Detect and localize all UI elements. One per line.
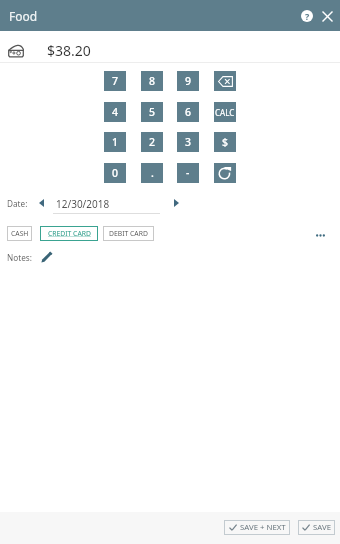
button[interactable]: CASH [7, 226, 32, 241]
button[interactable]: 1 [104, 132, 126, 152]
staticText: 0 [112, 166, 119, 180]
button[interactable] [214, 163, 236, 183]
staticText: 4 [112, 105, 119, 119]
staticText: 9 [185, 74, 192, 88]
staticText: CALC [215, 107, 235, 118]
button[interactable]: SAVE + NEXT [224, 520, 290, 535]
staticText: 1 [112, 135, 119, 149]
button[interactable]: Previous day [33, 195, 49, 211]
staticText: - [186, 166, 190, 180]
button[interactable]: 6 [177, 102, 199, 122]
staticText: DEBIT CARD [109, 229, 148, 238]
staticText: 8 [149, 74, 156, 88]
staticText: 2 [149, 135, 156, 149]
button[interactable]: 0 [104, 163, 126, 183]
staticText: Date: [7, 198, 28, 209]
button[interactable]: 4 [104, 102, 126, 122]
button[interactable]: Close [317, 6, 338, 27]
staticText: CASH [11, 229, 29, 238]
button[interactable]: . [141, 163, 163, 183]
staticText: SAVE + NEXT [240, 522, 286, 533]
staticText: 5 [149, 105, 156, 119]
staticText: ? [305, 10, 310, 22]
button[interactable]: Next day [168, 195, 184, 211]
staticText: . [151, 166, 154, 180]
button[interactable]: 8 [141, 71, 163, 91]
button[interactable]: More options [310, 227, 330, 243]
staticText: 3 [185, 135, 192, 149]
button[interactable]: Edit notes [38, 248, 56, 266]
staticText: 12/30/2018 [56, 197, 110, 211]
button[interactable]: Help [295, 4, 318, 27]
button[interactable]: CALC [214, 102, 236, 122]
staticText: $38.20 [47, 41, 91, 60]
button[interactable]: 5 [141, 102, 163, 122]
button[interactable]: 2 [141, 132, 163, 152]
staticText: $ [222, 135, 229, 149]
button[interactable]: - [177, 163, 199, 183]
staticText: CREDIT CARD [48, 229, 91, 238]
button[interactable] [214, 71, 236, 91]
staticText: 6 [185, 105, 192, 119]
staticText: SAVE [313, 522, 331, 533]
staticText: Notes: [7, 252, 32, 263]
button[interactable]: $ [214, 132, 236, 152]
button[interactable]: CREDIT CARD [40, 226, 98, 241]
button[interactable]: 3 [177, 132, 199, 152]
staticText: 7 [112, 74, 119, 88]
button[interactable]: 9 [177, 71, 199, 91]
staticText: Food [9, 8, 38, 24]
button[interactable]: DEBIT CARD [103, 226, 154, 241]
button[interactable]: 7 [104, 71, 126, 91]
button[interactable]: SAVE [298, 520, 335, 535]
